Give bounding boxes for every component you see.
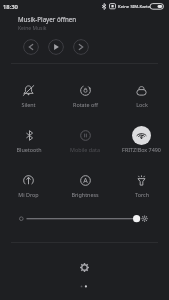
staticText: Mobile data	[70, 146, 100, 153]
button[interactable]: Torch	[113, 171, 169, 206]
button[interactable]: Mobile data	[57, 126, 113, 161]
button[interactable]: Silent	[0, 81, 57, 116]
button[interactable]: Bluetooth	[0, 126, 57, 161]
staticText: Silent	[21, 101, 36, 108]
button[interactable]: Rotate off	[57, 81, 113, 116]
button[interactable]	[0, 211, 169, 227]
staticText: 18:30	[3, 3, 18, 11]
staticText: Bluetooth	[16, 146, 42, 153]
button[interactable]: Play	[48, 39, 64, 55]
staticText: Keine SIM-Karte	[118, 3, 151, 9]
staticText: Lock	[136, 101, 148, 108]
staticText: FRITZ!Box 7490	[122, 146, 161, 153]
staticText: Rotate off	[73, 101, 98, 108]
staticText: Torch	[135, 191, 149, 198]
button[interactable]: FRITZ!Box 7490	[113, 126, 169, 161]
staticText: Musik-Player öffnen	[18, 15, 77, 23]
button[interactable]: Previous	[23, 39, 39, 55]
button[interactable]: Musik-Player öffnen	[0, 13, 169, 58]
staticText: Brightness	[71, 191, 99, 198]
button[interactable]: Lock	[113, 81, 169, 116]
button[interactable]: Settings	[76, 259, 92, 275]
staticText: Keine Musik	[18, 25, 47, 32]
button[interactable]: Mi Drop	[0, 171, 57, 206]
button[interactable]: Next	[73, 39, 89, 55]
button[interactable]: Brightness	[57, 171, 113, 206]
staticText: Mi Drop	[18, 191, 39, 198]
